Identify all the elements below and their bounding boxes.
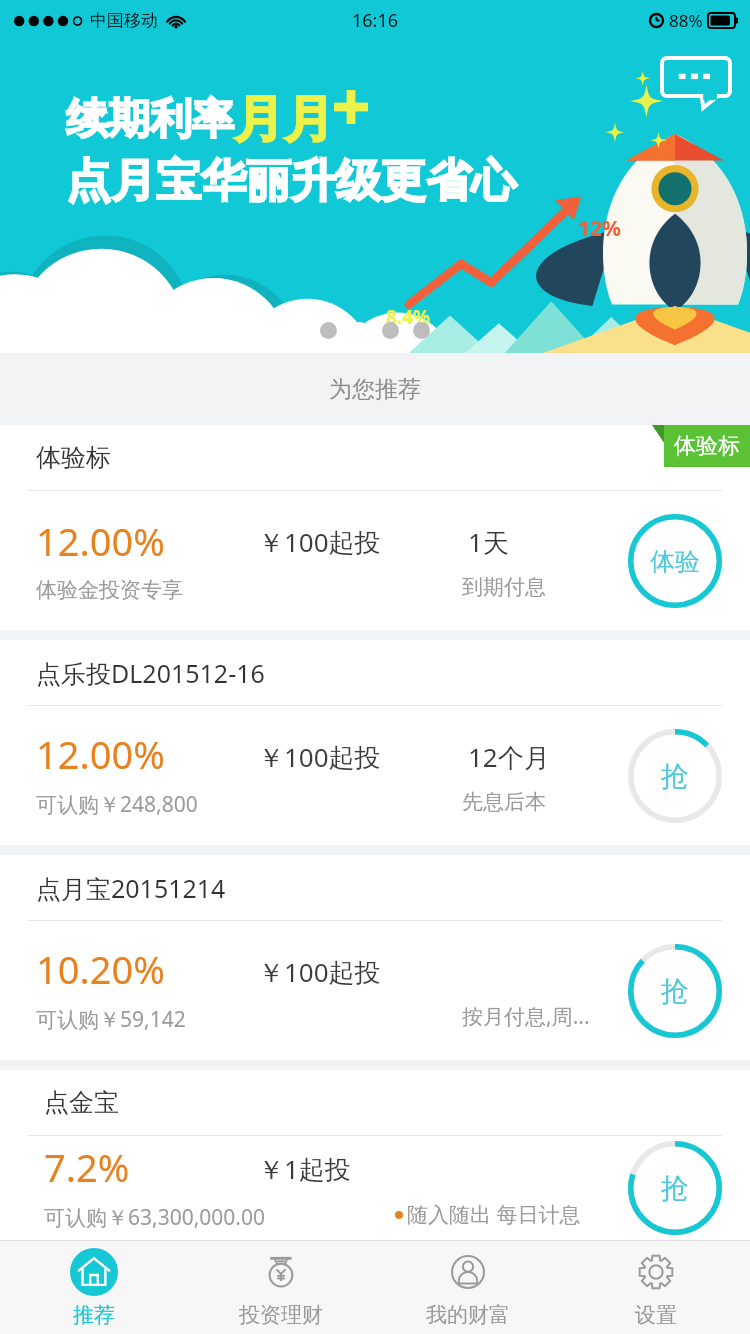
- staticText: 到期付息: [462, 574, 546, 600]
- staticText: 推荐: [73, 1302, 115, 1328]
- staticText: 7.2%: [44, 1141, 130, 1193]
- staticText: 体验标: [36, 442, 111, 473]
- staticText: ￥100起投: [258, 524, 381, 560]
- button[interactable]: 点金宝: [0, 1070, 750, 1240]
- staticText: 体验: [650, 546, 700, 577]
- staticText: 点月宝20151214: [36, 871, 226, 905]
- button[interactable]: 我的财富: [374, 1240, 562, 1334]
- staticText: 月月: [234, 88, 334, 151]
- staticText: 1天: [468, 524, 509, 560]
- staticText: 续期利率: [66, 93, 234, 146]
- staticText: 12.00%: [36, 515, 165, 567]
- staticText: 我的财富: [426, 1302, 510, 1328]
- staticText: 8.4%: [386, 304, 431, 330]
- staticText: 可认购￥63,300,000.00: [44, 1203, 266, 1232]
- staticText: 点金宝: [44, 1087, 119, 1118]
- staticText: 12%: [578, 214, 621, 243]
- staticText: 投资理财: [239, 1302, 323, 1328]
- staticText: 体验标: [674, 432, 740, 460]
- staticText: 抢: [661, 1171, 689, 1206]
- button[interactable]: 推荐: [0, 1240, 187, 1334]
- staticText: 按月付息,周...: [462, 1002, 590, 1031]
- staticText: 随入随出 每日计息: [407, 1200, 581, 1229]
- staticText: 可认购￥248,800: [36, 790, 198, 819]
- staticText: 抢: [661, 759, 689, 794]
- button[interactable]: 抢: [628, 729, 722, 823]
- staticText: 体验金投资专享: [36, 577, 183, 603]
- button[interactable]: 体验: [628, 514, 722, 608]
- button[interactable]: 抢: [628, 1141, 722, 1235]
- staticText: 为您推荐: [329, 375, 421, 404]
- staticText: 中国移动: [90, 10, 158, 31]
- staticText: 16:16: [352, 8, 399, 33]
- button[interactable]: 投资理财: [187, 1240, 374, 1334]
- staticText: 抢: [661, 974, 689, 1009]
- staticText: 可认购￥59,142: [36, 1005, 186, 1034]
- staticText: ￥100起投: [258, 954, 381, 990]
- staticText: 10.20%: [36, 943, 165, 995]
- button[interactable]: 消息: [660, 56, 732, 110]
- staticText: 12个月: [468, 739, 550, 775]
- button[interactable]: 设置: [562, 1240, 750, 1334]
- staticText: 先息后本: [462, 789, 546, 815]
- staticText: ￥100起投: [258, 739, 381, 775]
- button[interactable]: 体验标: [0, 425, 750, 630]
- button[interactable]: 抢: [628, 944, 722, 1038]
- button[interactable]: 点乐投DL201512-16: [0, 640, 750, 845]
- staticText: 88%: [669, 9, 703, 32]
- staticText: 点乐投DL201512-16: [36, 656, 265, 690]
- staticText: 设置: [635, 1302, 677, 1328]
- button[interactable]: 点月宝20151214: [0, 855, 750, 1060]
- staticText: 点月宝华丽升级更省心: [66, 153, 516, 210]
- staticText: ￥1起投: [258, 1151, 351, 1187]
- staticText: 12.00%: [36, 728, 165, 780]
